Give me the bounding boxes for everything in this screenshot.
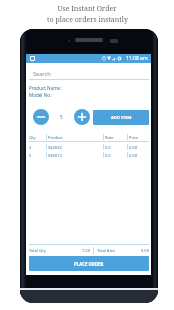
staticText: Search <box>33 70 51 78</box>
staticText: 5 <box>60 114 63 120</box>
staticText: 543032 <box>48 145 103 150</box>
staticText: 0.0 <box>105 153 127 158</box>
staticText: to place orders instantly <box>47 15 128 25</box>
staticText: 0.0 <box>105 145 127 150</box>
button[interactable]: ADD ITEM <box>93 110 149 125</box>
staticText: PLACE ORDER <box>74 261 104 267</box>
staticText: 0.00 <box>129 145 149 150</box>
staticText: 11:08 am <box>126 55 148 62</box>
button[interactable]: Decrease quantity <box>33 109 49 125</box>
staticText: Use Instant Order <box>57 4 117 14</box>
staticText: ADD ITEM <box>111 115 132 121</box>
staticText: 2 <box>29 145 46 150</box>
staticText: 0.00 <box>129 153 149 158</box>
staticText: Rate <box>105 135 127 140</box>
staticText: Product Name : <box>29 85 63 91</box>
staticText: Model No : <box>29 92 53 98</box>
staticText: Product <box>48 135 103 140</box>
button[interactable]: PLACE ORDER <box>29 256 149 271</box>
staticText: 7.00 <box>82 248 90 253</box>
staticText: Total Qty <box>29 248 46 253</box>
staticText: Total Amt <box>97 248 115 253</box>
staticText: 549013 <box>48 153 103 158</box>
staticText: 5 <box>29 153 46 158</box>
staticText: Qty <box>29 135 46 140</box>
staticText: Price <box>129 135 149 140</box>
button[interactable]: Increase quantity <box>74 109 90 125</box>
staticText: 0.00 <box>141 248 149 253</box>
